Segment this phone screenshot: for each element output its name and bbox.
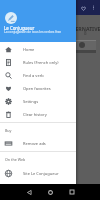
button[interactable]: More options xyxy=(89,3,98,12)
button[interactable]: Back xyxy=(19,184,40,200)
staticText: On the Web xyxy=(5,157,26,162)
staticText: Buy xyxy=(5,128,12,133)
button[interactable]: Remove ads xyxy=(0,137,76,150)
button[interactable]: Settings xyxy=(0,95,76,108)
staticText: Find a verb xyxy=(23,73,44,78)
button[interactable]: Rules (French only) xyxy=(0,56,76,69)
staticText: La conjugaison de tous les verbes fran xyxy=(4,30,62,34)
button[interactable]: Home xyxy=(40,184,61,200)
staticText: Clear history xyxy=(23,112,47,117)
button[interactable]: Site Le Conjugueur xyxy=(0,167,76,180)
staticText: Open favorites xyxy=(23,86,51,91)
button[interactable]: Find a verb xyxy=(0,69,76,82)
staticText: Le Conjugueur xyxy=(4,25,35,31)
button[interactable]: Home xyxy=(0,43,76,56)
staticText: Site Le Conjugueur xyxy=(23,171,59,176)
staticText: 8 xyxy=(84,30,87,36)
button[interactable]: Open favorites xyxy=(0,82,76,95)
staticText: Remove ads xyxy=(23,141,46,146)
button[interactable]: Recent apps xyxy=(61,184,82,200)
button[interactable]: Clear history xyxy=(0,108,76,121)
staticText: ALTERNATIVE xyxy=(66,25,100,32)
staticText: Home xyxy=(23,47,35,52)
button[interactable]: Favorite xyxy=(78,3,88,13)
staticText: Rules (French only) xyxy=(23,60,59,65)
staticText: Settings xyxy=(23,99,39,104)
